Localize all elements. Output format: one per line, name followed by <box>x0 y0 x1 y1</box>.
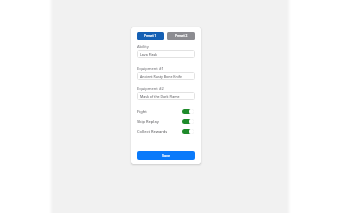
other: Fight toggle, on <box>182 108 195 114</box>
button[interactable]: Skip Replay <box>137 116 195 125</box>
button[interactable]: Lava Flask <box>137 50 195 58</box>
button[interactable]: Preset 2 <box>167 32 195 40</box>
staticText: Lava Flask <box>140 52 158 57</box>
other: Collect Rewards toggle, on <box>182 128 195 134</box>
button[interactable]: Preset 1 <box>137 32 164 40</box>
staticText: Mask of the Dark Flame <box>140 94 180 99</box>
staticText: Ancient Rusty Bone Knife <box>140 74 182 79</box>
button[interactable]: Ancient Rusty Bone Knife <box>137 72 195 80</box>
staticText: Equipment #2 <box>137 86 164 91</box>
button[interactable]: Collect Rewards <box>137 126 195 135</box>
staticText: Collect Rewards <box>137 129 168 134</box>
staticText: Fight <box>137 109 147 114</box>
staticText: Save <box>162 153 170 158</box>
button[interactable]: Mask of the Dark Flame <box>137 92 195 100</box>
button[interactable]: Save <box>137 151 195 160</box>
staticText: Ability <box>137 44 149 49</box>
staticText: Equipment #1 <box>137 66 164 71</box>
staticText: Skip Replay <box>137 119 159 124</box>
other: Skip Replay toggle, on <box>182 118 195 124</box>
staticText: Preset 2 <box>175 34 188 38</box>
staticText: Preset 1 <box>144 34 157 38</box>
button[interactable]: Fight <box>137 106 195 115</box>
